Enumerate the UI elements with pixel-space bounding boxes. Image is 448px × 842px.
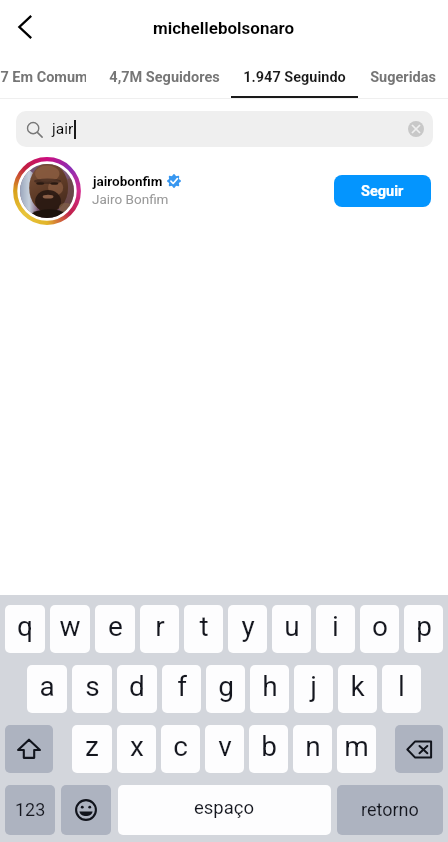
staticText: h — [262, 670, 278, 703]
button[interactable]: jair — [16, 111, 433, 147]
staticText: jairobonfim — [93, 173, 163, 189]
staticText: n — [305, 730, 321, 763]
button[interactable]: x — [117, 725, 156, 773]
staticText: e — [108, 610, 123, 643]
staticText: x — [130, 730, 144, 763]
button[interactable]: Seguir — [334, 175, 431, 207]
staticText: z — [85, 730, 99, 763]
staticText: michellebolsonaro — [153, 18, 295, 38]
button[interactable]: 4,7M Seguidores — [102, 56, 226, 99]
staticText: p — [416, 610, 432, 643]
staticText: g — [218, 670, 234, 703]
button[interactable]: 7 Em Comum — [0, 56, 86, 99]
button[interactable]: a — [27, 665, 67, 713]
staticText: 7 Em Comum — [0, 69, 86, 86]
staticText: Sugeridas — [370, 69, 436, 86]
button[interactable]: jairobonfim — [0, 157, 448, 225]
staticText: l — [398, 670, 405, 703]
staticText: q — [17, 610, 33, 643]
button[interactable]: i — [316, 605, 355, 653]
staticText: m — [344, 730, 369, 763]
staticText: jair — [52, 120, 74, 138]
staticText: c — [173, 730, 188, 763]
button[interactable]: Shift — [5, 725, 53, 773]
button[interactable]: k — [338, 665, 377, 713]
staticText: Jairo Bonfim — [92, 191, 169, 207]
button[interactable]: r — [140, 605, 179, 653]
staticText: o — [372, 610, 388, 643]
button[interactable]: Clear text — [407, 120, 425, 138]
staticText: a — [39, 670, 55, 703]
button[interactable]: 123 — [5, 785, 55, 835]
staticText: d — [129, 670, 145, 703]
staticText: k — [350, 670, 365, 703]
button[interactable]: b — [249, 725, 288, 773]
button[interactable]: v — [205, 725, 244, 773]
button[interactable]: j — [294, 665, 333, 713]
staticText: j — [310, 670, 317, 703]
button[interactable]: p — [404, 605, 443, 653]
button[interactable]: t — [184, 605, 223, 653]
button[interactable]: n — [293, 725, 332, 773]
button[interactable]: Emoji — [61, 785, 111, 835]
button[interactable]: g — [206, 665, 245, 713]
staticText: Seguir — [361, 183, 404, 200]
staticText: i — [332, 610, 339, 643]
button[interactable]: e — [95, 605, 135, 653]
button[interactable]: l — [382, 665, 421, 713]
button[interactable]: retorno — [337, 785, 443, 835]
button[interactable]: o — [360, 605, 399, 653]
button[interactable]: z — [72, 725, 112, 773]
button[interactable]: s — [72, 665, 112, 713]
button[interactable]: d — [117, 665, 157, 713]
staticText: u — [284, 610, 300, 643]
button[interactable]: 1.947 Seguindo — [231, 56, 358, 99]
staticText: w — [59, 610, 81, 643]
staticText: t — [199, 610, 209, 643]
button[interactable]: q — [5, 605, 45, 653]
button[interactable]: Backspace — [395, 725, 443, 773]
staticText: r — [155, 610, 165, 643]
staticText: espaço — [194, 797, 255, 819]
button[interactable]: h — [250, 665, 289, 713]
staticText: 1.947 Seguindo — [243, 69, 346, 86]
staticText: retorno — [361, 799, 419, 820]
staticText: 4,7M Seguidores — [109, 69, 220, 86]
button[interactable]: c — [161, 725, 200, 773]
button[interactable]: espaço — [118, 785, 331, 835]
staticText: v — [218, 730, 232, 763]
button[interactable]: Sugeridas — [358, 56, 448, 99]
button[interactable]: f — [162, 665, 201, 713]
staticText: s — [85, 670, 100, 703]
button[interactable]: w — [50, 605, 90, 653]
staticText: 123 — [15, 799, 46, 820]
staticText: y — [241, 610, 255, 643]
staticText: b — [261, 730, 277, 763]
button[interactable]: y — [228, 605, 267, 653]
button[interactable]: Back — [4, 6, 48, 50]
button[interactable]: m — [337, 725, 376, 773]
button[interactable]: u — [272, 605, 311, 653]
staticText: f — [177, 670, 187, 703]
